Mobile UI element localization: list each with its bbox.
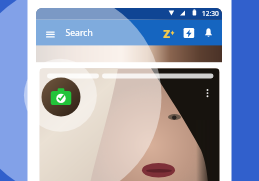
button[interactable] bbox=[0, 0, 259, 181]
